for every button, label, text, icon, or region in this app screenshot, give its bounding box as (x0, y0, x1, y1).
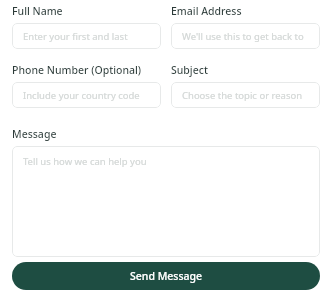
button[interactable]: Choose the topic or reason for contact (171, 82, 320, 108)
button[interactable]: Enter your first and last name (12, 23, 161, 49)
staticText: Full Name (12, 4, 63, 18)
staticText: Send Message (130, 269, 203, 283)
staticText: Email Address (171, 4, 242, 18)
button[interactable]: Tell us how we can help you (12, 146, 320, 257)
staticText: Message (12, 127, 57, 141)
staticText: Phone Number (Optional) (12, 63, 142, 77)
staticText: Tell us how we can help you (23, 155, 147, 168)
button[interactable]: Include your country code (12, 82, 161, 108)
staticText: Include your country code (23, 89, 140, 102)
button[interactable]: We'll use this to get back to you (171, 23, 320, 49)
staticText: Enter your first and last name (23, 30, 150, 43)
staticText: Choose the topic or reason for contact (182, 89, 309, 102)
staticText: Subject (171, 63, 208, 77)
button[interactable]: Send Message (12, 262, 320, 290)
staticText: We'll use this to get back to you (182, 30, 309, 43)
